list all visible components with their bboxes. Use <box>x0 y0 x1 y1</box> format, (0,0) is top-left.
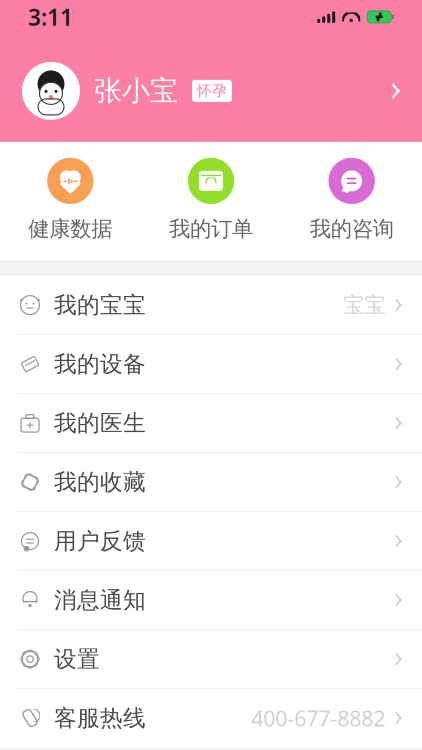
button[interactable]: 我的咨询 <box>281 158 422 242</box>
staticText: 消息通知 <box>54 586 146 614</box>
staticText: 400-677-8882 <box>251 704 385 732</box>
staticText: 我的咨询 <box>310 216 394 242</box>
button[interactable]: 我的收藏 <box>0 453 422 512</box>
staticText: 怀孕 <box>197 82 227 100</box>
staticText: 我的收藏 <box>54 468 146 496</box>
button[interactable]: 客服热线 <box>0 689 422 748</box>
staticText: 张小宝 <box>94 74 178 108</box>
button[interactable]: 张小宝 <box>0 40 422 142</box>
staticText: 客服热线 <box>54 704 146 732</box>
button[interactable]: 用户反馈 <box>0 512 422 571</box>
button[interactable]: 我的宝宝 <box>0 276 422 335</box>
staticText: 我的订单 <box>169 216 253 242</box>
button[interactable]: 我的设备 <box>0 335 422 394</box>
staticText: 健康数据 <box>28 216 112 242</box>
button[interactable]: 我的订单 <box>141 158 281 242</box>
staticText: 宝宝 <box>343 292 385 318</box>
staticText: 设置 <box>54 645 100 673</box>
staticText: 用户反馈 <box>54 527 146 555</box>
staticText: 我的宝宝 <box>54 291 146 319</box>
staticText: 3:11 <box>28 2 73 32</box>
staticText: 我的医生 <box>54 409 146 437</box>
button[interactable]: 我的医生 <box>0 394 422 453</box>
button[interactable]: 设置 <box>0 630 422 689</box>
button[interactable]: 健康数据 <box>0 158 141 242</box>
staticText: 我的设备 <box>54 350 146 378</box>
button[interactable]: 消息通知 <box>0 571 422 630</box>
